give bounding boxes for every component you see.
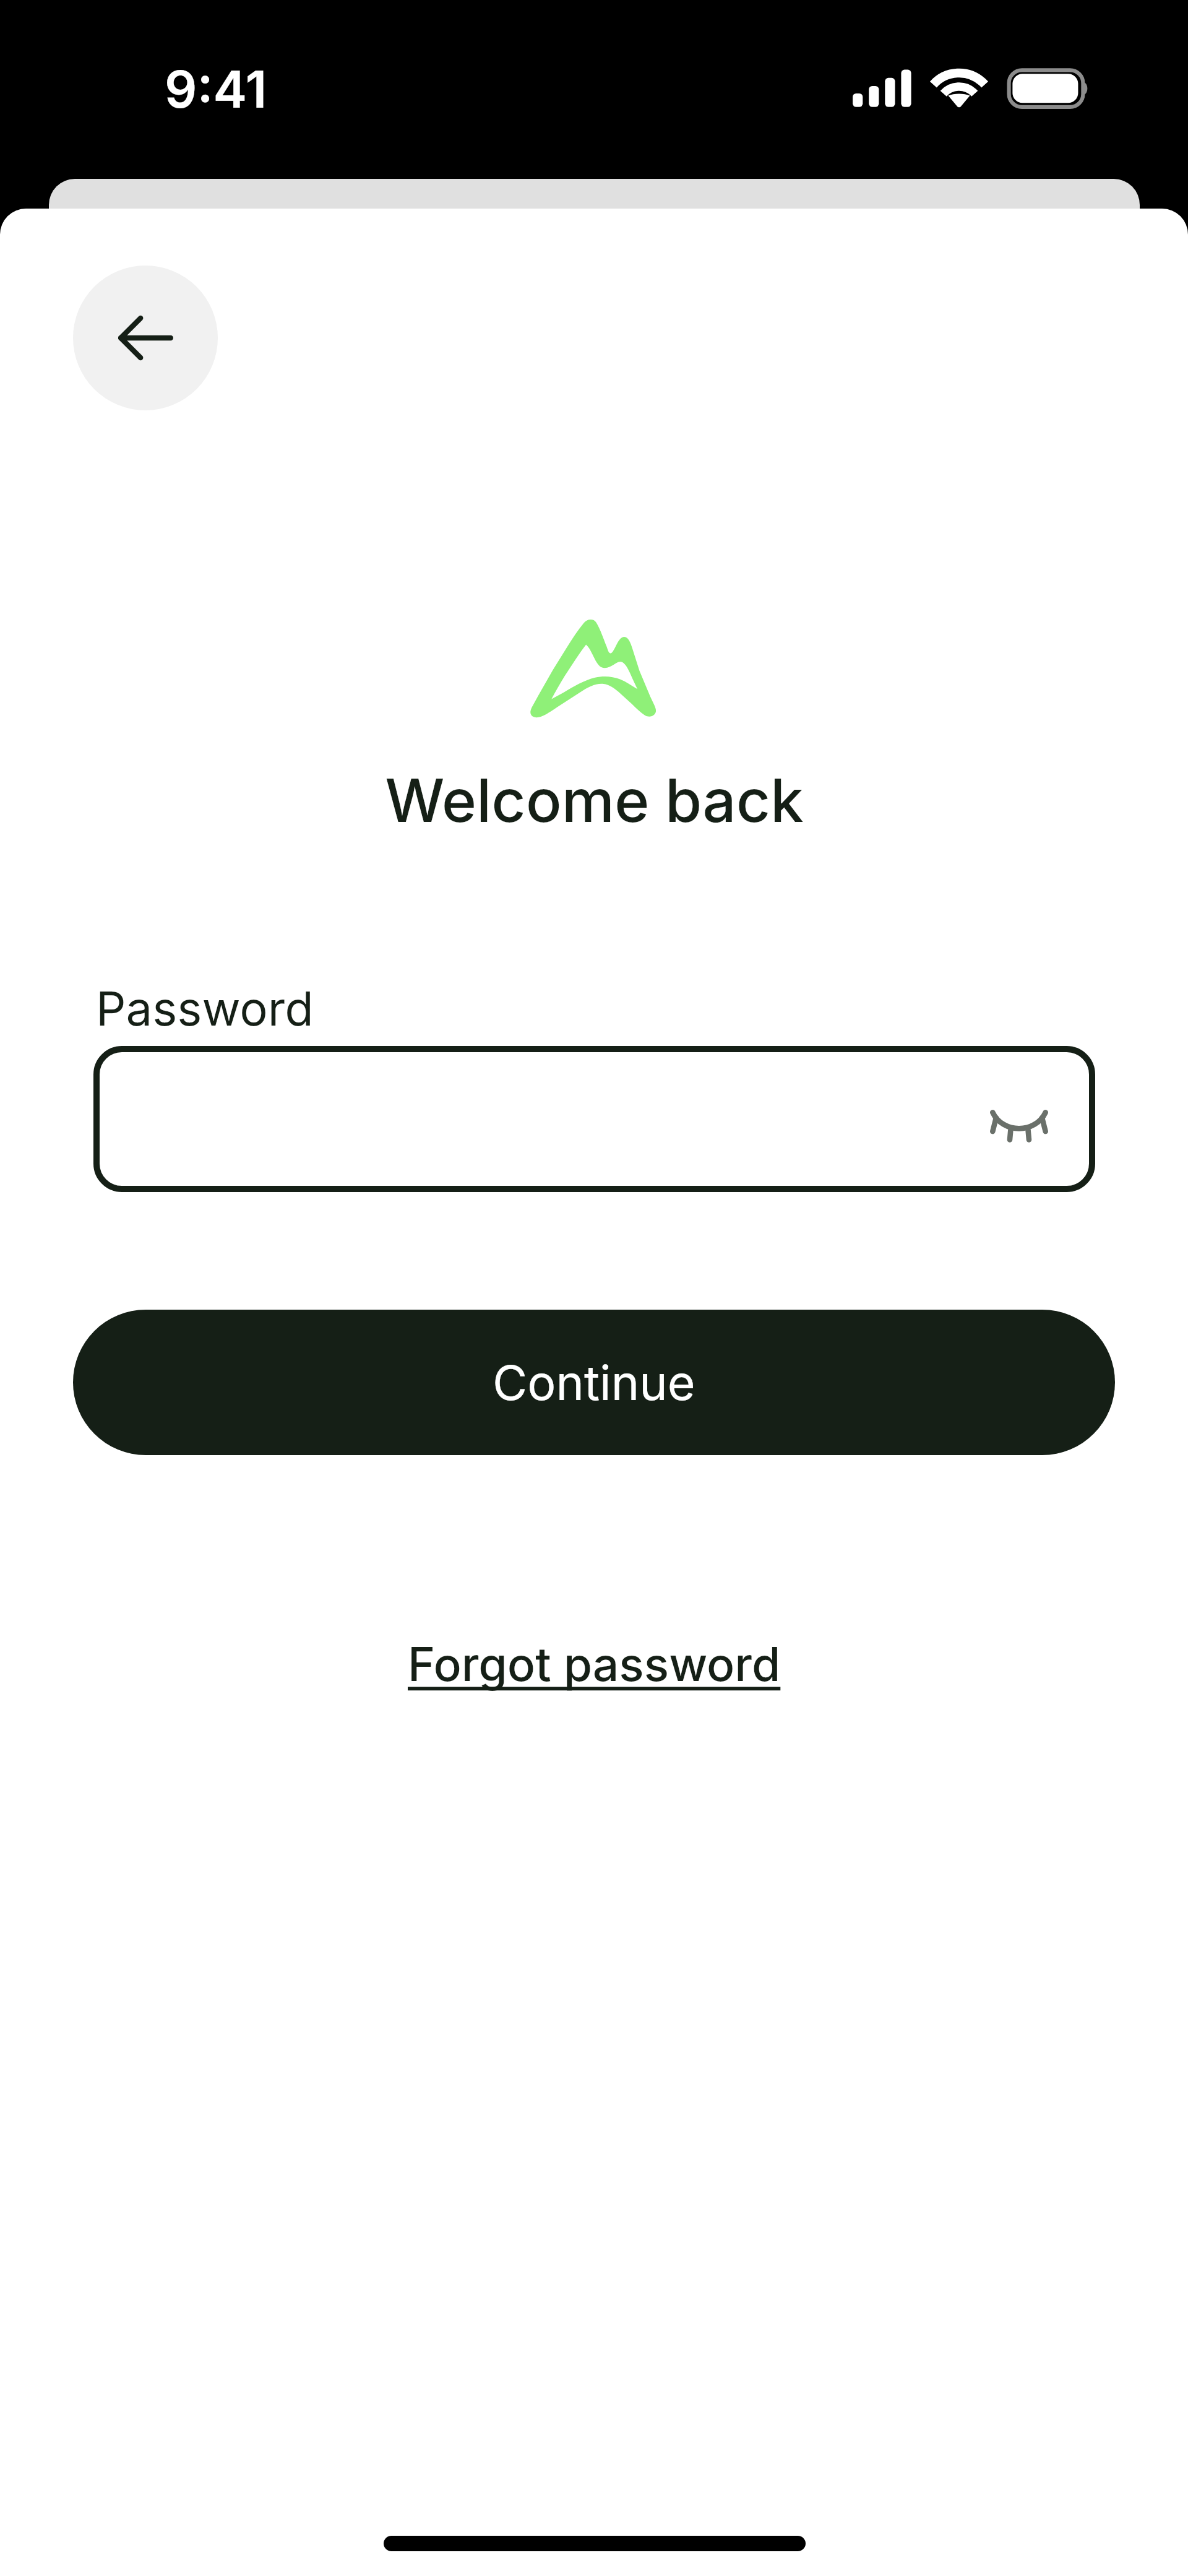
staticText: Welcome back (385, 764, 804, 836)
staticText: Forgot password (408, 1636, 781, 1692)
button[interactable]: Back (73, 266, 218, 410)
staticText: Continue (493, 1354, 695, 1411)
button[interactable]: Show password (979, 1096, 1059, 1155)
button[interactable]: Continue (73, 1310, 1115, 1455)
button[interactable]: Show password (93, 1046, 1095, 1192)
staticText: Password (96, 980, 314, 1037)
staticText: 9:41 (165, 59, 267, 120)
button[interactable]: Forgot password (398, 1630, 791, 1698)
